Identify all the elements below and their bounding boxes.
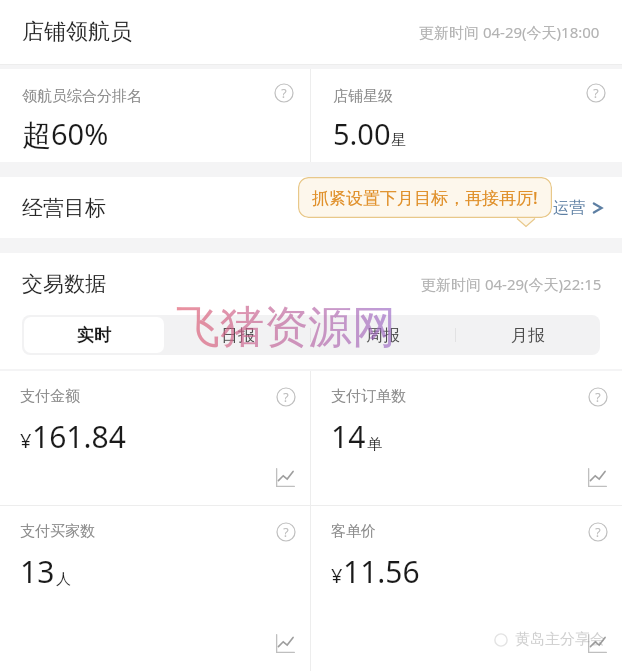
- staticText: 星: [391, 131, 406, 150]
- button[interactable]: 客单价: [311, 506, 622, 671]
- button[interactable]: Help: [276, 387, 296, 407]
- button[interactable]: Help: [276, 522, 296, 542]
- staticText: 交易数据: [22, 271, 106, 297]
- button[interactable]: 支付订单数: [311, 371, 622, 505]
- staticText: ?: [595, 389, 601, 406]
- button[interactable]: 日报: [166, 315, 310, 355]
- button[interactable]: Help: [274, 83, 294, 103]
- staticText: 支付金额: [20, 387, 80, 406]
- button[interactable]: Trend chart: [586, 633, 608, 655]
- staticText: ¥: [20, 427, 32, 454]
- staticText: 支付买家数: [20, 522, 95, 541]
- staticText: 单: [367, 435, 382, 454]
- button[interactable]: 支付买家数: [0, 506, 310, 671]
- staticText: 客单价: [331, 522, 376, 541]
- staticText: 实时: [77, 325, 111, 346]
- button[interactable]: 支付金额: [0, 371, 310, 505]
- staticText: 11.56: [343, 551, 420, 592]
- button[interactable]: 周报: [310, 315, 455, 355]
- staticText: 人: [56, 570, 71, 589]
- staticText: 更新时间 04-29(今天)18:00: [419, 22, 600, 42]
- button[interactable]: Help: [588, 387, 608, 407]
- staticText: 店铺领航员: [22, 18, 132, 46]
- button[interactable]: 实时: [24, 317, 164, 353]
- staticText: 店铺星级: [333, 87, 393, 106]
- staticText: 支付订单数: [331, 387, 406, 406]
- staticText: ?: [595, 524, 601, 541]
- button[interactable]: Trend chart: [274, 467, 296, 489]
- button[interactable]: Trend chart: [274, 633, 296, 655]
- staticText: 抓紧设置下月目标，再接再厉!: [312, 186, 538, 209]
- staticText: 黄岛主分享会: [515, 630, 605, 649]
- button[interactable]: 领航员综合分排名: [0, 69, 310, 162]
- staticText: 设置经营目标，科学管理日常运营: [345, 198, 585, 218]
- staticText: 周报: [366, 325, 400, 346]
- staticText: 领航员综合分排名: [22, 87, 142, 106]
- staticText: 月报: [511, 325, 545, 346]
- staticText: ?: [281, 85, 287, 102]
- staticText: ?: [593, 85, 599, 102]
- staticText: ?: [283, 524, 289, 541]
- staticText: 5.00: [333, 114, 391, 153]
- staticText: 13: [20, 551, 55, 592]
- staticText: 日报: [221, 325, 255, 346]
- button[interactable]: 店铺领航员: [0, 0, 622, 64]
- button[interactable]: Trend chart: [586, 467, 608, 489]
- staticText: ?: [283, 389, 289, 406]
- staticText: 经营目标: [22, 195, 106, 221]
- staticText: ¥: [331, 562, 343, 589]
- button[interactable]: 店铺星级: [311, 69, 622, 162]
- staticText: 超60%: [22, 114, 109, 154]
- button[interactable]: Help: [586, 83, 606, 103]
- button[interactable]: 经营目标: [0, 177, 622, 238]
- staticText: 161.84: [32, 416, 126, 457]
- staticText: 更新时间 04-29(今天)22:15: [421, 274, 602, 294]
- button[interactable]: 月报: [455, 315, 600, 355]
- staticText: 飞猪资源网: [176, 300, 396, 355]
- button[interactable]: Help: [588, 522, 608, 542]
- staticText: 14: [331, 416, 366, 457]
